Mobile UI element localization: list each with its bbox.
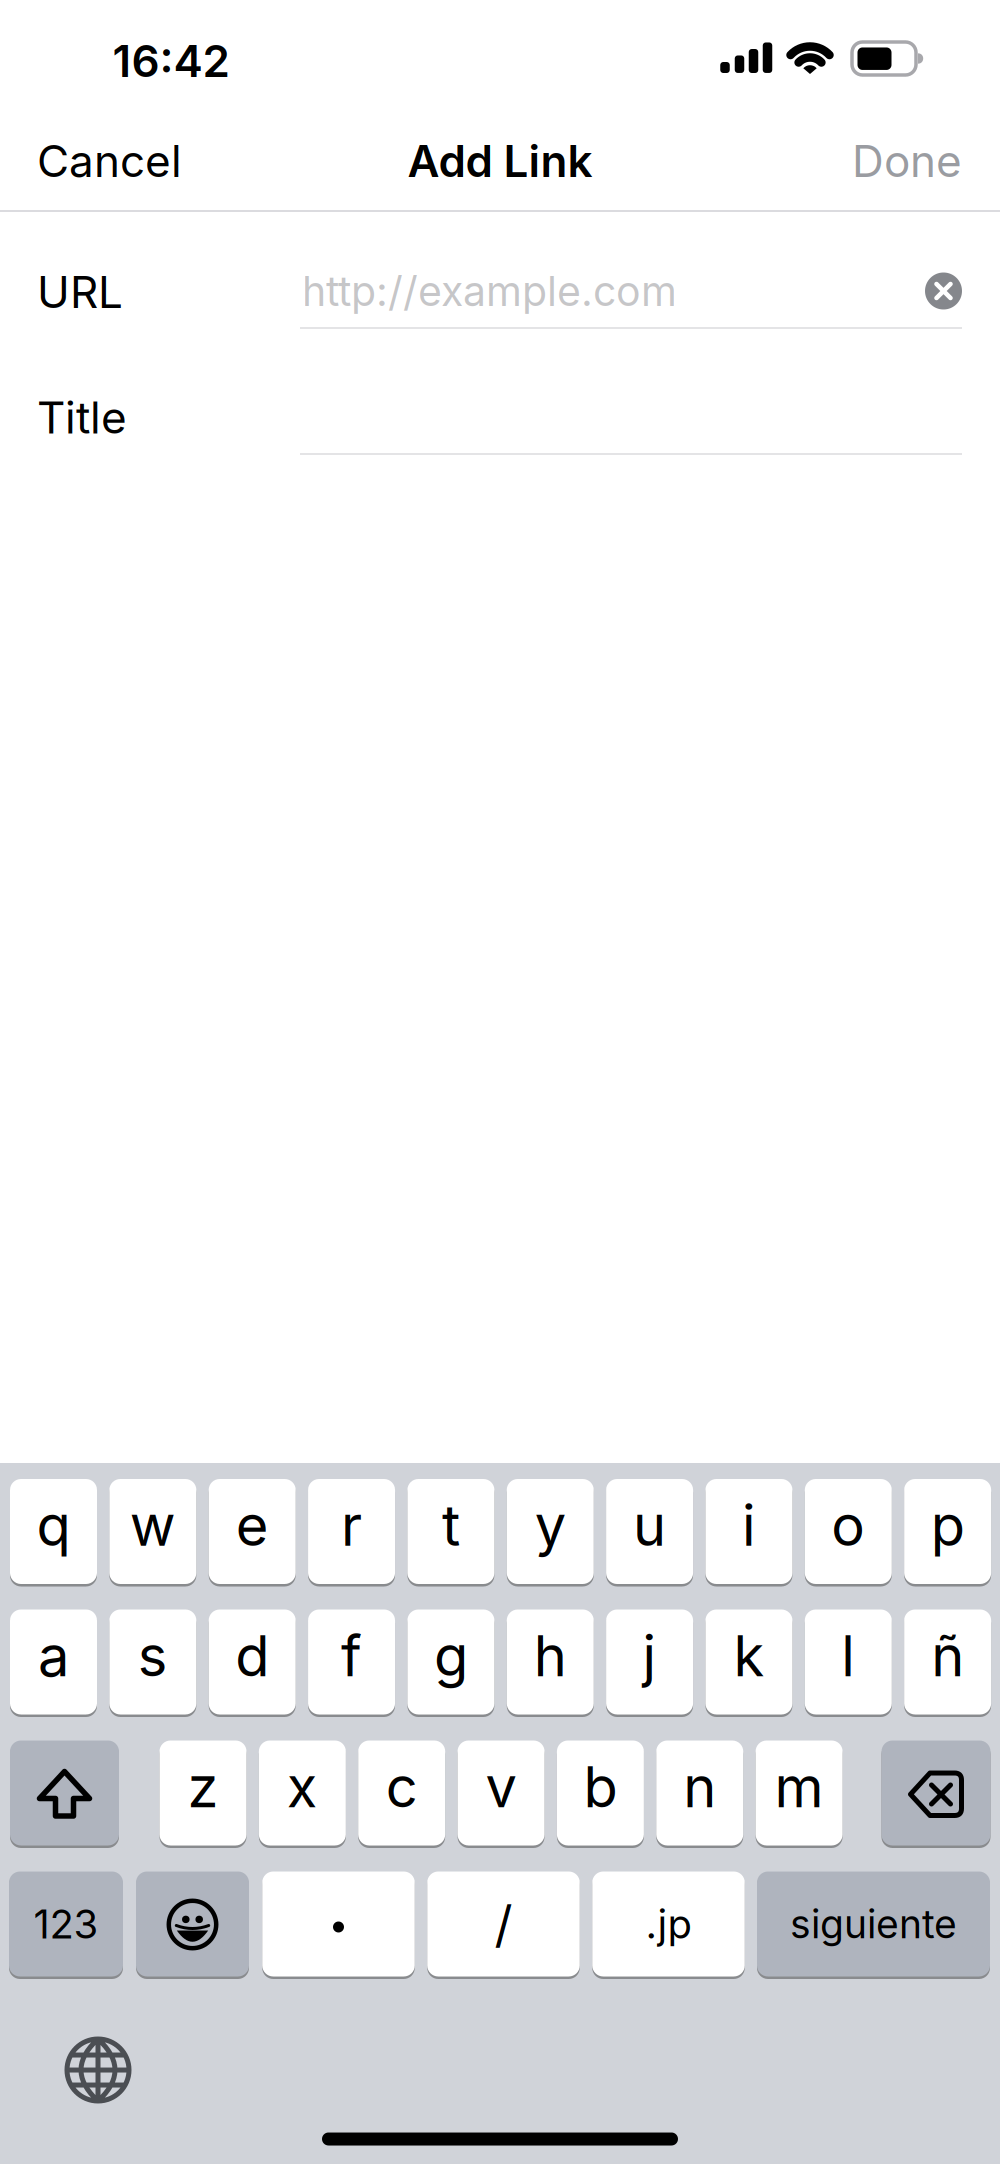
button[interactable]: Done (662, 126, 962, 196)
staticText: g (434, 1622, 468, 1690)
button[interactable]: siguiente (757, 1870, 990, 1978)
button[interactable]: Next keyboard (53, 2025, 143, 2115)
staticText: s (138, 1622, 168, 1690)
staticText: f (341, 1622, 362, 1690)
button[interactable]: Delete (881, 1739, 990, 1847)
button[interactable]: 123 (9, 1870, 123, 1978)
button[interactable]: o (805, 1477, 892, 1585)
button[interactable]: n (656, 1739, 743, 1847)
staticText: o (831, 1492, 865, 1559)
button[interactable]: b (557, 1739, 644, 1847)
staticText: r (341, 1492, 362, 1559)
staticText: x (287, 1753, 318, 1821)
staticText: l (841, 1622, 855, 1690)
button[interactable]: s (109, 1608, 196, 1716)
button[interactable]: i (705, 1477, 792, 1585)
button[interactable]: Emoji (136, 1870, 249, 1978)
staticText: a (38, 1622, 69, 1690)
staticText: Add Link (407, 134, 592, 188)
staticText: i (742, 1492, 756, 1559)
staticText: http://example.com (302, 266, 677, 316)
button[interactable]: e (209, 1477, 296, 1585)
staticText: w (130, 1492, 176, 1559)
staticText: z (187, 1753, 218, 1821)
button[interactable]: v (457, 1739, 544, 1847)
button[interactable]: ñ (904, 1608, 991, 1716)
staticText: d (235, 1622, 269, 1690)
button[interactable]: q (10, 1477, 97, 1585)
button[interactable]: Shift (10, 1739, 119, 1847)
button[interactable]: Cancel (37, 126, 337, 196)
staticText: p (931, 1492, 965, 1559)
staticText: 123 (33, 1900, 98, 1948)
staticText: Cancel (37, 134, 182, 188)
button[interactable]: g (407, 1608, 494, 1716)
button[interactable]: f (308, 1608, 395, 1716)
button[interactable]: z (159, 1739, 246, 1847)
staticText: Done (852, 134, 962, 188)
button[interactable]: t (407, 1477, 494, 1585)
button[interactable]: Title (302, 369, 962, 459)
button[interactable]: a (10, 1608, 97, 1716)
button[interactable]: / (427, 1870, 580, 1978)
button[interactable]: y (507, 1477, 594, 1585)
button[interactable]: d (209, 1608, 296, 1716)
staticText: 16:42 (112, 34, 229, 88)
staticText: ñ (931, 1622, 964, 1690)
staticText: q (36, 1492, 70, 1559)
staticText: h (534, 1622, 567, 1690)
staticText: e (236, 1492, 269, 1559)
staticText: Title (37, 391, 127, 444)
button[interactable]: k (705, 1608, 792, 1716)
staticText: y (535, 1492, 566, 1559)
staticText: URL (37, 265, 123, 319)
button[interactable]: Period (262, 1870, 415, 1978)
button[interactable]: h (507, 1608, 594, 1716)
button[interactable]: j (606, 1608, 693, 1716)
staticText: b (583, 1753, 617, 1821)
button[interactable]: URL (302, 246, 962, 336)
staticText: u (633, 1492, 666, 1559)
staticText: .jp (645, 1900, 691, 1948)
button[interactable]: Clear text (925, 272, 962, 309)
staticText: k (733, 1622, 764, 1690)
button[interactable]: c (358, 1739, 445, 1847)
button[interactable]: .jp (592, 1870, 745, 1978)
button[interactable]: w (109, 1477, 196, 1585)
staticText: / (494, 1894, 512, 1954)
staticText: j (643, 1622, 657, 1690)
button[interactable]: m (756, 1739, 843, 1847)
button[interactable]: u (606, 1477, 693, 1585)
staticText: siguiente (790, 1900, 957, 1948)
staticText: n (683, 1753, 716, 1821)
button[interactable]: l (805, 1608, 892, 1716)
staticText: c (386, 1753, 418, 1821)
staticText: v (485, 1753, 516, 1821)
button[interactable]: p (904, 1477, 991, 1585)
button[interactable]: r (308, 1477, 395, 1585)
staticText: m (775, 1753, 824, 1821)
staticText: t (442, 1492, 460, 1559)
button[interactable]: x (259, 1739, 346, 1847)
